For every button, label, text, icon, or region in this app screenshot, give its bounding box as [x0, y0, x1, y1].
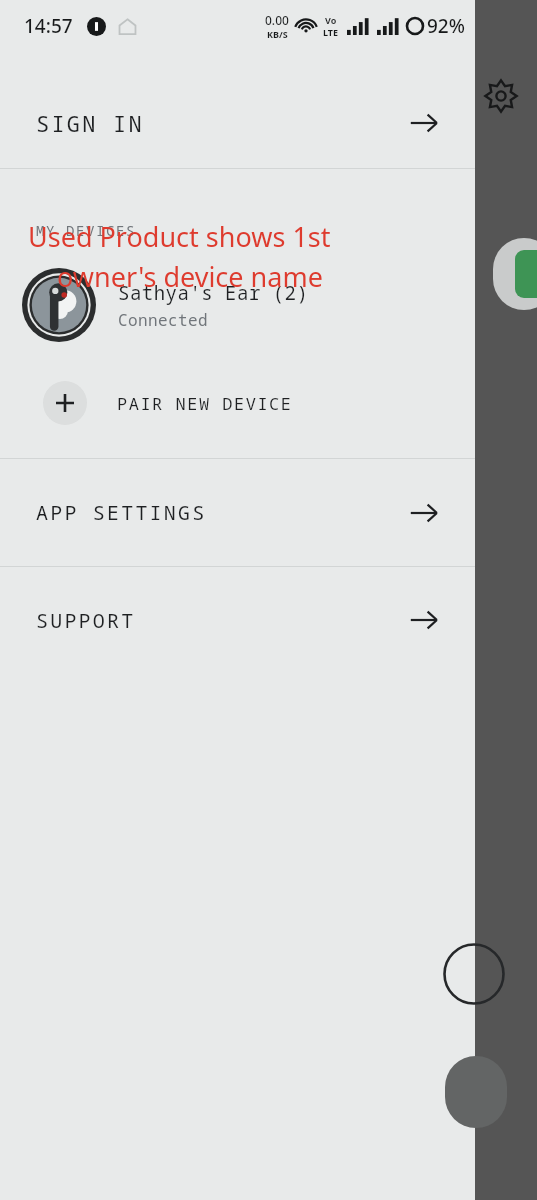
staticText: owner's device name	[57, 258, 323, 295]
staticText: KB/S	[267, 28, 288, 40]
staticText: LTE	[323, 26, 339, 38]
button[interactable]: Sathya's Ear (2)	[0, 257, 475, 353]
staticText: MY DEVICES	[36, 221, 136, 240]
staticText: PAIR NEW DEVICE	[117, 392, 293, 415]
button[interactable]: Settings	[481, 76, 521, 116]
staticText: Connected	[118, 309, 209, 331]
staticText: Sathya's Ear (2)	[118, 280, 309, 306]
staticText: Vo	[325, 14, 337, 26]
staticText: Used Product shows 1st	[28, 218, 331, 255]
button[interactable]: SIGN IN	[0, 78, 475, 168]
staticText: 0.00	[265, 12, 289, 28]
staticText: SIGN IN	[36, 108, 144, 138]
staticText: 14:57	[24, 13, 73, 39]
staticText: APP SETTINGS	[36, 499, 207, 526]
button[interactable]: SUPPORT	[0, 567, 475, 673]
button[interactable]: PAIR NEW DEVICE	[0, 365, 475, 441]
staticText: SUPPORT	[36, 607, 136, 634]
button[interactable]: APP SETTINGS	[0, 459, 475, 566]
staticText: 92%	[427, 13, 465, 39]
